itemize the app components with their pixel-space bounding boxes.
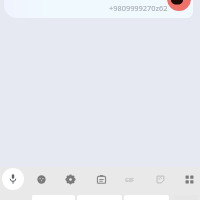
button[interactable]: Clipboard xyxy=(90,168,112,190)
button[interactable]: More options xyxy=(178,168,200,190)
button[interactable]: Stickers xyxy=(149,168,171,190)
staticText: +9809999270z62 xyxy=(109,3,168,13)
button[interactable]: GIF xyxy=(119,168,141,190)
staticText: GIF xyxy=(125,176,135,183)
button[interactable]: Keyboard settings xyxy=(59,168,81,190)
button[interactable]: Emoji xyxy=(30,168,52,190)
button[interactable]: Voice input xyxy=(2,168,24,190)
button[interactable]: Contact avatar xyxy=(167,0,191,11)
